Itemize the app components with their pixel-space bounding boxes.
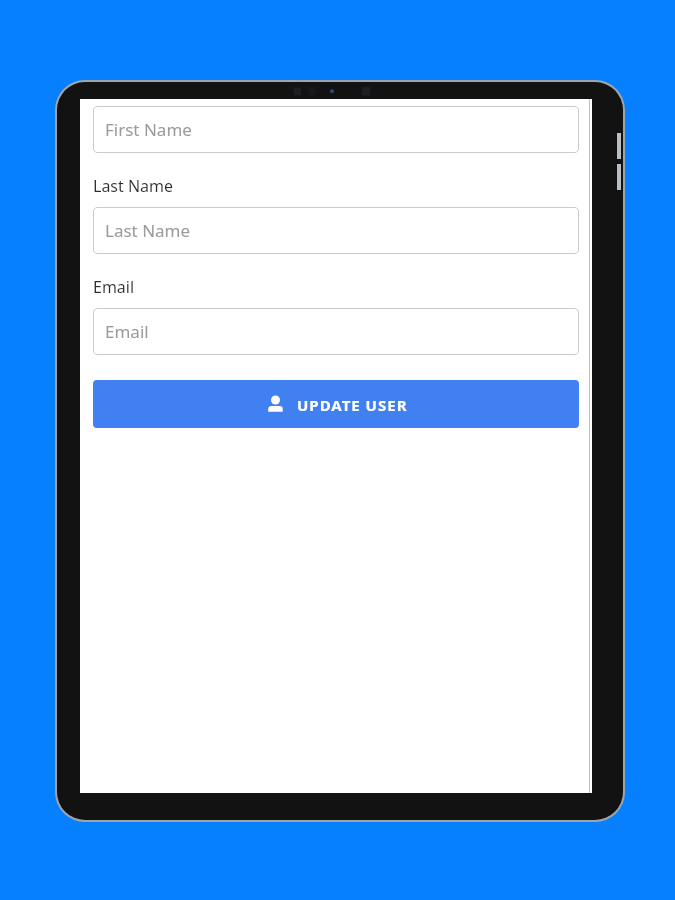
button[interactable]: First Name: [93, 106, 579, 153]
button[interactable]: Email: [93, 308, 579, 355]
staticText: First Name: [105, 118, 192, 141]
staticText: Last Name: [93, 175, 174, 197]
button[interactable]: Last Name: [93, 207, 579, 254]
staticText: Last Name: [105, 219, 191, 242]
staticText: Email: [105, 320, 149, 343]
staticText: UPDATE USER: [297, 395, 408, 415]
button[interactable]: UPDATE USER: [93, 380, 579, 428]
staticText: Email: [93, 276, 135, 298]
